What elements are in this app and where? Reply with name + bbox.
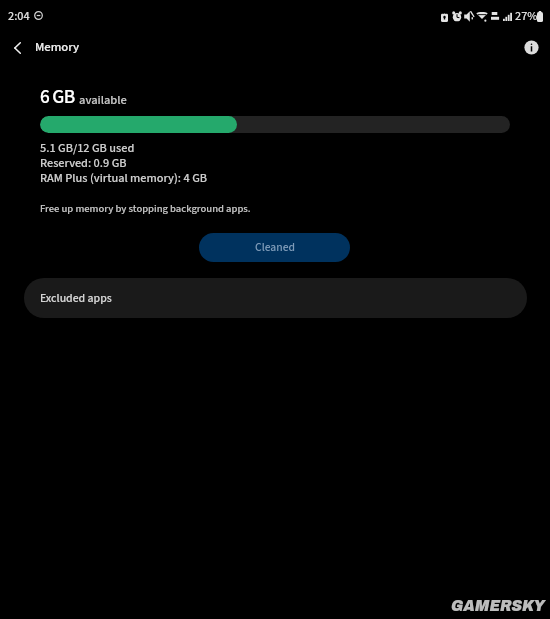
button[interactable]: Cleaned <box>199 233 350 262</box>
staticText: available <box>79 91 127 109</box>
button[interactable]: Excluded apps <box>24 278 527 318</box>
staticText: Free up memory by stopping background ap… <box>40 201 251 216</box>
staticText: Excluded apps <box>40 290 112 307</box>
staticText: GAMERSKY <box>451 597 545 615</box>
staticText: 5.1 GB/12 GB used <box>40 139 135 156</box>
staticText: RAM Plus (virtual memory): 4 GB <box>40 169 207 186</box>
staticText: 27% <box>515 8 538 25</box>
staticText: Memory <box>35 38 80 56</box>
staticText: Reserved: 0.9 GB <box>40 154 127 171</box>
staticText: 6 GB <box>40 83 75 111</box>
button[interactable]: Back <box>0 30 35 65</box>
staticText: 2:04 <box>8 8 30 25</box>
button[interactable]: Information <box>514 30 548 64</box>
staticText: Cleaned <box>255 239 295 256</box>
